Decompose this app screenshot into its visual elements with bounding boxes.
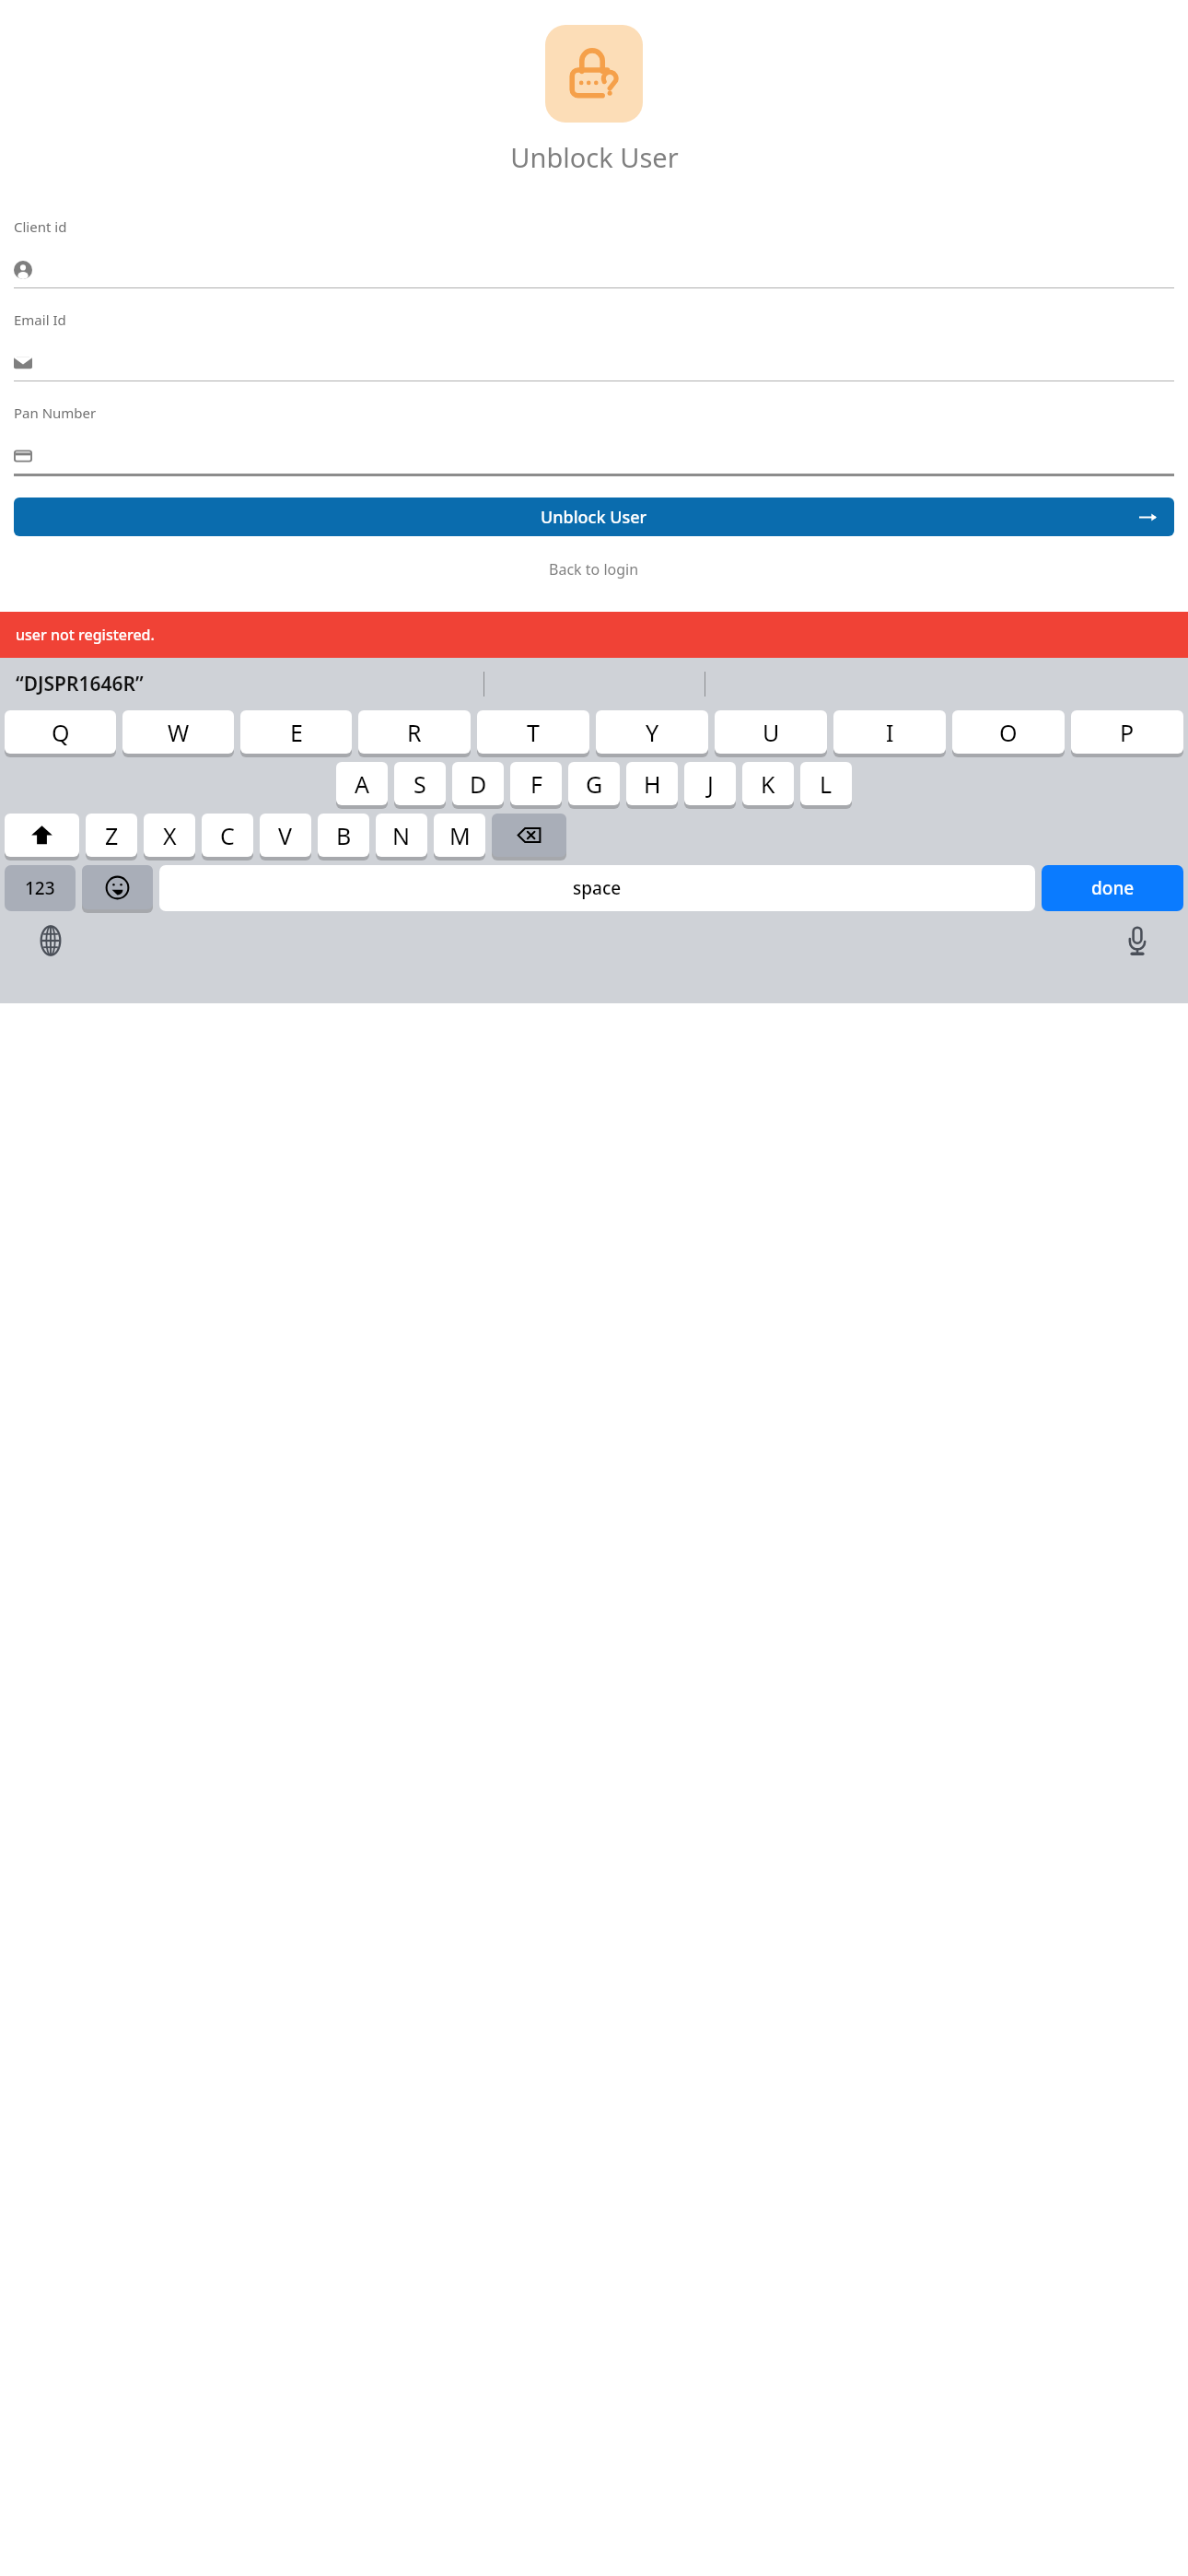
button[interactable]: O xyxy=(952,710,1065,754)
button[interactable]: Emoji xyxy=(82,865,153,909)
staticText: P xyxy=(1120,717,1135,748)
staticText: T xyxy=(527,717,540,748)
button[interactable]: Backspace xyxy=(492,814,566,857)
button[interactable]: W xyxy=(122,710,234,754)
button[interactable] xyxy=(14,442,1174,470)
staticText: S xyxy=(413,768,426,800)
button[interactable]: C xyxy=(202,814,253,857)
staticText: X xyxy=(163,820,177,851)
button[interactable] xyxy=(14,256,1174,284)
staticText: Unblock User xyxy=(541,506,647,529)
button[interactable]: X xyxy=(144,814,195,857)
button[interactable]: A xyxy=(336,762,388,805)
staticText: user not registered. xyxy=(16,625,155,645)
staticText: Y xyxy=(646,717,659,748)
button[interactable]: N xyxy=(376,814,427,857)
button[interactable]: I xyxy=(833,710,946,754)
button[interactable]: Back to login xyxy=(0,559,1188,580)
button[interactable]: S xyxy=(394,762,446,805)
button[interactable]: E xyxy=(240,710,352,754)
button[interactable]: Switch language xyxy=(33,923,68,958)
button[interactable]: Unblock User xyxy=(14,498,1174,536)
button[interactable]: F xyxy=(510,762,562,805)
staticText: L xyxy=(820,768,833,800)
staticText: B xyxy=(336,820,352,851)
button[interactable]: D xyxy=(452,762,504,805)
staticText: N xyxy=(392,820,411,851)
button[interactable]: B xyxy=(318,814,369,857)
button[interactable]: U xyxy=(715,710,827,754)
staticText: Z xyxy=(105,820,119,851)
staticText: O xyxy=(999,717,1018,748)
button[interactable]: G xyxy=(568,762,620,805)
button[interactable]: V xyxy=(260,814,311,857)
staticText: C xyxy=(220,820,235,851)
button[interactable]: M xyxy=(434,814,485,857)
staticText: space xyxy=(573,876,622,900)
staticText: W xyxy=(168,717,190,748)
staticText: D xyxy=(470,768,487,800)
staticText: E xyxy=(290,717,303,748)
staticText: Q xyxy=(52,717,70,748)
staticText: Client id xyxy=(14,217,67,236)
staticText: I xyxy=(886,717,894,748)
staticText: F xyxy=(530,768,542,800)
button[interactable] xyxy=(14,349,1174,377)
staticText: R xyxy=(407,717,422,748)
staticText: K xyxy=(761,768,775,800)
staticText: A xyxy=(355,768,369,800)
staticText: V xyxy=(278,820,293,851)
button[interactable]: Q xyxy=(5,710,116,754)
button[interactable]: space xyxy=(159,865,1035,911)
staticText: M xyxy=(449,820,471,851)
button[interactable]: Shift xyxy=(5,814,79,857)
staticText: Pan Number xyxy=(14,404,97,422)
button[interactable]: Y xyxy=(596,710,708,754)
staticText: U xyxy=(763,717,780,748)
staticText: J xyxy=(707,768,714,800)
button[interactable]: P xyxy=(1071,710,1183,754)
staticText: H xyxy=(644,768,661,800)
staticText: Unblock User xyxy=(510,139,679,175)
button[interactable]: L xyxy=(800,762,852,805)
staticText: Back to login xyxy=(549,559,639,580)
button[interactable]: R xyxy=(358,710,471,754)
button[interactable]: T xyxy=(477,710,589,754)
button[interactable]: 123 xyxy=(5,865,76,911)
staticText: “DJSPR1646R” xyxy=(16,671,144,697)
staticText: done xyxy=(1091,876,1135,900)
staticText: Email Id xyxy=(14,310,66,329)
button[interactable]: K xyxy=(742,762,794,805)
button[interactable]: H xyxy=(626,762,678,805)
staticText: G xyxy=(586,768,603,800)
staticText: 123 xyxy=(25,876,55,900)
button[interactable]: Dictation xyxy=(1120,923,1155,958)
button[interactable]: J xyxy=(684,762,736,805)
button[interactable]: done xyxy=(1042,865,1183,911)
button[interactable]: Z xyxy=(86,814,137,857)
